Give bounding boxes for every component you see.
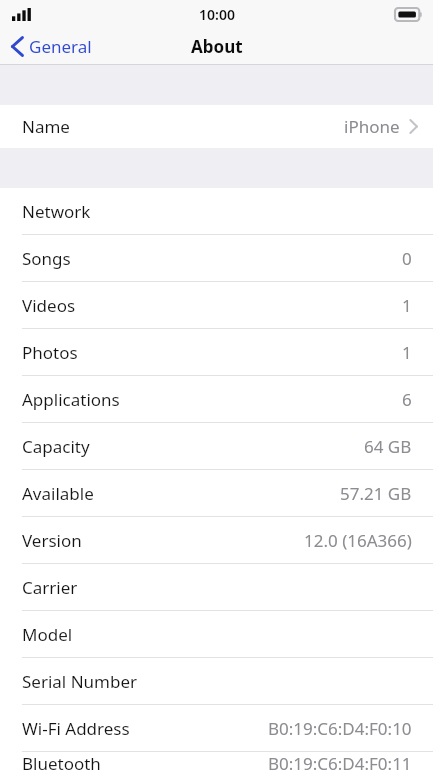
staticText: Applications xyxy=(22,388,120,411)
staticText: Name xyxy=(22,115,70,138)
staticText: Available xyxy=(22,482,94,505)
staticText: Songs xyxy=(22,247,71,270)
staticText: 1 xyxy=(402,341,412,364)
button[interactable]: Name xyxy=(0,105,433,148)
button[interactable]: Capacity xyxy=(0,423,433,469)
staticText: 57.21 GB xyxy=(340,482,412,505)
button[interactable]: Model xyxy=(0,611,433,657)
staticText: B0:19:C6:D4:F0:10 xyxy=(268,717,412,740)
staticText: About xyxy=(191,35,243,58)
staticText: Version xyxy=(22,529,82,552)
staticText: 64 GB xyxy=(364,435,412,458)
button[interactable]: Songs xyxy=(0,235,433,281)
staticText: B0:19:C6:D4:F0:11 xyxy=(268,752,412,770)
staticText: Videos xyxy=(22,294,76,317)
button[interactable]: Serial Number xyxy=(0,658,433,704)
staticText: Wi-Fi Address xyxy=(22,717,130,740)
button[interactable]: Network xyxy=(0,188,433,234)
button[interactable]: Bluetooth xyxy=(0,752,433,770)
staticText: 12.0 (16A366) xyxy=(304,529,412,552)
staticText: Serial Number xyxy=(22,670,138,693)
button[interactable]: Videos xyxy=(0,282,433,328)
staticText: General xyxy=(29,35,92,58)
button[interactable]: Photos xyxy=(0,329,433,375)
staticText: Photos xyxy=(22,341,78,364)
staticText: Network xyxy=(22,200,91,223)
staticText: 1 xyxy=(402,294,412,317)
button[interactable]: Version xyxy=(0,517,433,563)
staticText: Model xyxy=(22,623,73,646)
button[interactable]: Applications xyxy=(0,376,433,422)
staticText: iPhone xyxy=(344,115,400,138)
button[interactable]: Back to General xyxy=(0,35,102,58)
staticText: Carrier xyxy=(22,576,78,599)
staticText: 10:00 xyxy=(199,5,235,24)
staticText: Capacity xyxy=(22,435,90,458)
other: Back to General xyxy=(11,36,23,57)
button[interactable]: Wi-Fi Address xyxy=(0,705,433,751)
staticText: Bluetooth xyxy=(22,752,101,770)
staticText: 6 xyxy=(402,388,412,411)
staticText: 0 xyxy=(402,247,412,270)
button[interactable]: Available xyxy=(0,470,433,516)
button[interactable]: Carrier xyxy=(0,564,433,610)
